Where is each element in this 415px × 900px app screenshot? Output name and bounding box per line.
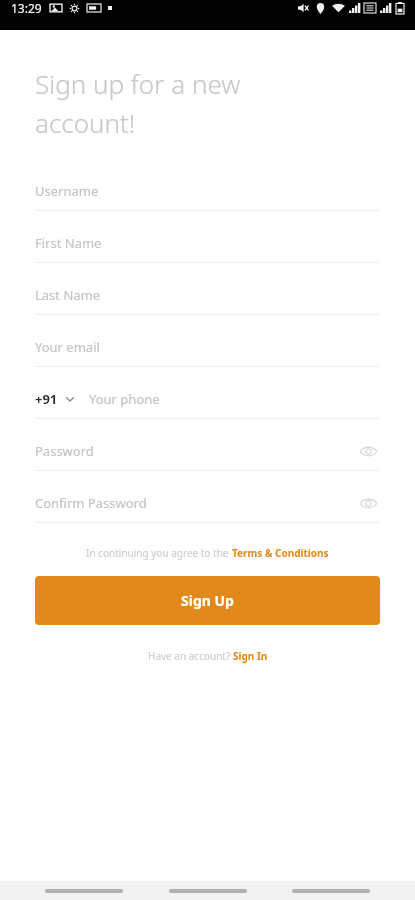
staticText: Last Name	[35, 286, 101, 304]
button[interactable]: +91	[35, 380, 380, 432]
button[interactable]: Toggle password visibility	[356, 439, 380, 463]
staticText: Username	[35, 182, 99, 200]
staticText: +91	[35, 390, 58, 408]
button[interactable]: Your email	[35, 328, 380, 380]
staticText: Password	[35, 442, 94, 460]
button[interactable]: Select country code	[63, 392, 77, 406]
staticText: Confirm Password	[35, 494, 147, 512]
staticText: Sign Up	[181, 591, 234, 610]
staticText: In continuing you agree to the	[86, 546, 232, 560]
staticText: First Name	[35, 234, 102, 252]
staticText: Have an account?	[148, 649, 233, 663]
button[interactable]: Terms & Conditions	[232, 546, 329, 560]
button[interactable]: Sign In	[233, 649, 268, 663]
button[interactable]: Navigation	[169, 889, 247, 893]
button[interactable]: Last Name	[35, 276, 380, 328]
staticText: Sign up for a new	[35, 66, 241, 101]
staticText: Your phone	[89, 390, 160, 408]
button[interactable]: Confirm Password	[35, 484, 380, 536]
staticText: Terms & Conditions	[232, 546, 329, 560]
button[interactable]: First Name	[35, 224, 380, 276]
staticText: Your email	[35, 338, 100, 356]
button[interactable]: Toggle password visibility	[356, 491, 380, 515]
staticText: 13:29	[11, 0, 42, 16]
button[interactable]: Username	[35, 172, 380, 224]
button[interactable]: Navigation	[45, 889, 123, 893]
staticText: account!	[35, 105, 136, 140]
staticText: Sign In	[233, 649, 268, 663]
button[interactable]: Password	[35, 432, 380, 484]
button[interactable]: Sign Up	[35, 576, 380, 625]
button[interactable]: Navigation	[292, 889, 370, 893]
